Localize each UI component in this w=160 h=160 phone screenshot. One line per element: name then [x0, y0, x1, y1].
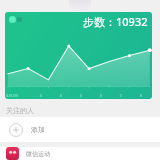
- button[interactable]: Profile avatar: [69, 0, 91, 13]
- button[interactable]: 添加: [0, 117, 160, 142]
- staticText: 5: [71, 93, 91, 98]
- staticText: 3: [31, 93, 51, 98]
- button[interactable]: 微信运动: [0, 147, 160, 160]
- staticText: 8: [131, 93, 151, 98]
- staticText: 步数：10932: [83, 14, 148, 29]
- staticText: 7: [111, 93, 131, 98]
- staticText: 微信运动: [26, 150, 50, 158]
- button[interactable]: My profile: [9, 16, 22, 23]
- staticText: 4: [51, 93, 71, 98]
- staticText: 6: [91, 93, 111, 98]
- button[interactable]: My profile: [5, 12, 152, 99]
- staticText: 添加: [31, 125, 45, 134]
- staticText: 4月2日: [6, 93, 31, 98]
- staticText: 关注的人: [6, 106, 34, 115]
